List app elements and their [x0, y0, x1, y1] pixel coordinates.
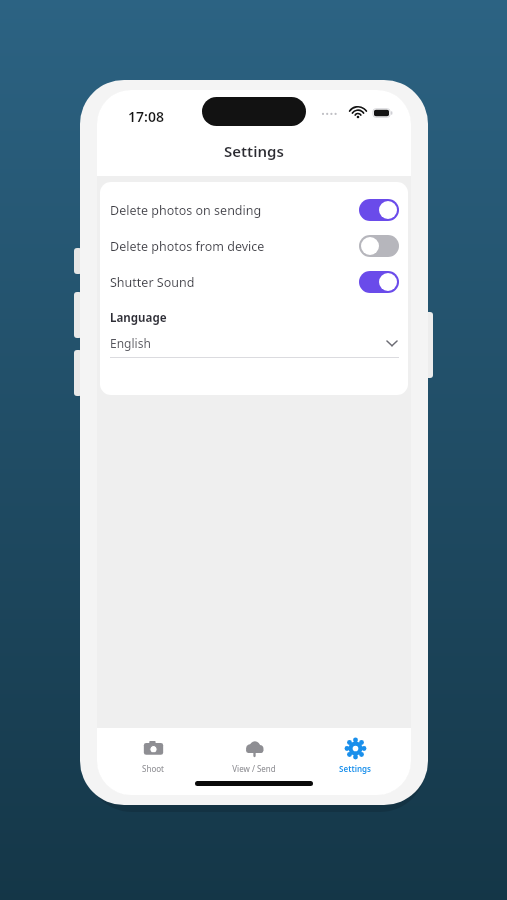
staticText: Shutter Sound: [110, 274, 359, 291]
staticText: Language: [110, 310, 167, 326]
staticText: Settings: [339, 763, 371, 774]
staticText: Delete photos on sending: [110, 202, 359, 219]
other: Settings: [345, 738, 366, 759]
staticText: View / Send: [232, 763, 276, 774]
button[interactable]: Shutter Sound: [100, 264, 408, 300]
button[interactable]: View / Send: [209, 736, 299, 776]
other: Shoot: [143, 738, 164, 759]
staticText: Delete photos from device: [110, 238, 359, 255]
button[interactable]: Settings: [310, 736, 400, 776]
button[interactable]: Delete photos on sending: [100, 192, 408, 228]
other: View / Send: [244, 738, 265, 759]
button[interactable]: Shoot: [108, 736, 198, 776]
staticText: Settings: [224, 141, 284, 161]
button[interactable]: Delete photos from device: [100, 228, 408, 264]
button[interactable]: Language: [100, 310, 408, 358]
staticText: 17:08: [128, 107, 164, 126]
staticText: Shoot: [142, 763, 164, 774]
staticText: English: [110, 335, 385, 351]
